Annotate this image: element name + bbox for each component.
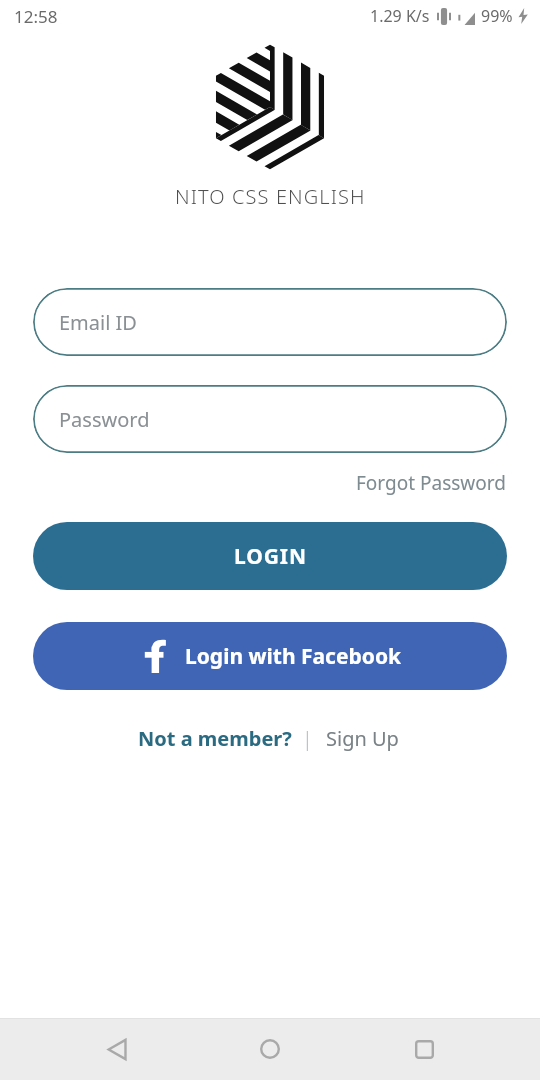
staticText: LOGIN — [234, 542, 307, 571]
button[interactable]: Login with Facebook — [33, 622, 507, 690]
staticText: Sign Up — [326, 725, 399, 752]
staticText: 99% — [481, 5, 513, 27]
staticText: 1.29 K/s — [370, 5, 430, 27]
button[interactable]: Email ID — [33, 288, 507, 356]
staticText: Email ID — [59, 309, 137, 336]
button[interactable]: Forgot Password — [352, 466, 510, 500]
staticText: Forgot Password — [356, 470, 506, 496]
staticText: NITO CSS ENGLISH — [175, 183, 366, 210]
staticText: | — [302, 725, 313, 752]
button[interactable]: Back — [80, 1018, 154, 1080]
button[interactable]: LOGIN — [33, 522, 507, 590]
staticText: Password — [59, 406, 150, 433]
staticText: Not a member? — [138, 725, 292, 752]
button[interactable]: Home — [233, 1018, 307, 1080]
button[interactable]: Sign Up — [323, 722, 402, 755]
button[interactable]: Recent apps — [387, 1018, 461, 1080]
staticText: Login with Facebook — [185, 642, 402, 671]
staticText: 12:58 — [14, 5, 58, 28]
button[interactable]: Password — [33, 385, 507, 453]
